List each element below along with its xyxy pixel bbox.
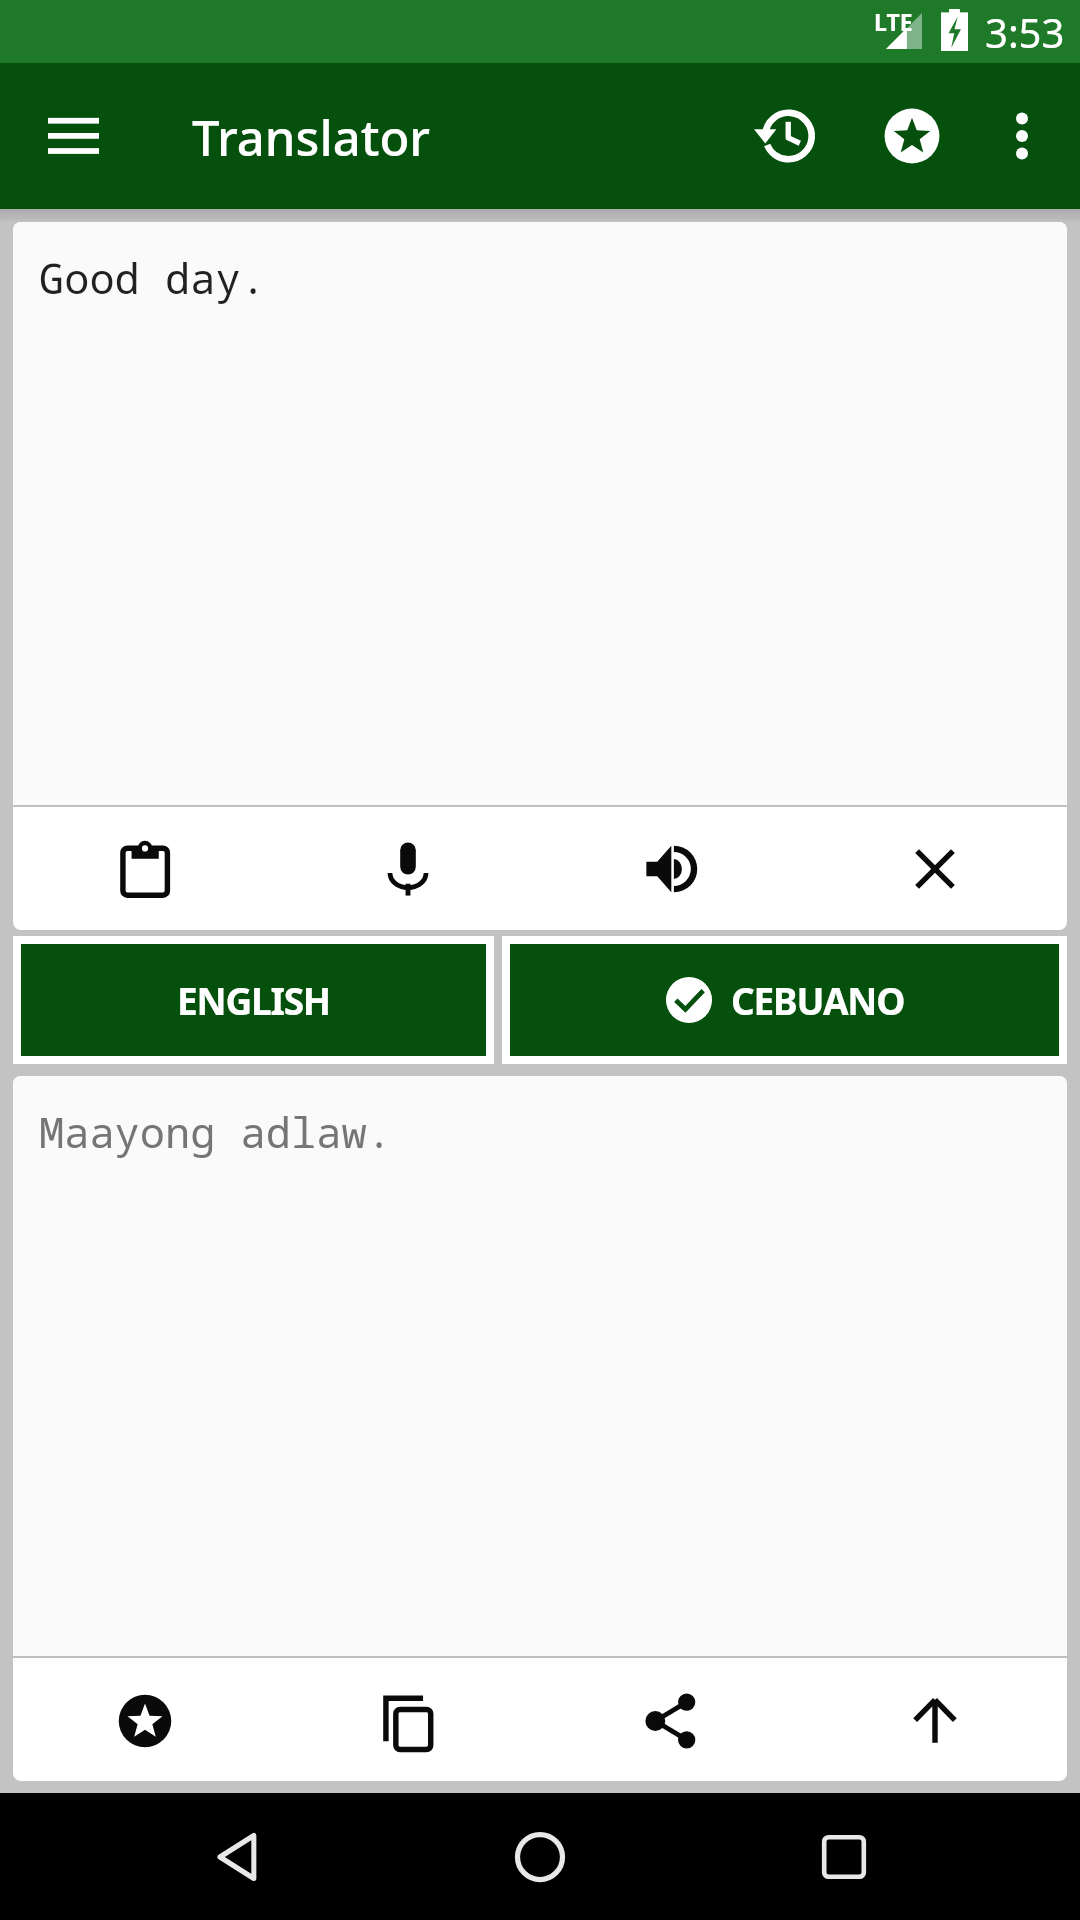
button[interactable]: Clear text	[803, 807, 1067, 930]
button[interactable]: Voice input	[276, 807, 539, 930]
button[interactable]: Share	[539, 1659, 803, 1781]
button[interactable]: Recents	[786, 1799, 902, 1915]
button[interactable]: Move up	[803, 1659, 1067, 1781]
button[interactable]: Open navigation menu	[24, 87, 122, 185]
button[interactable]: Listen	[539, 807, 803, 930]
staticText: Translator	[192, 104, 431, 171]
button[interactable]: More options	[972, 86, 1072, 186]
button[interactable]: History	[733, 86, 833, 186]
staticText: LTE	[874, 6, 913, 37]
button[interactable]: Favourite	[13, 1659, 276, 1781]
staticText: Good day.	[39, 249, 266, 306]
button[interactable]: Back	[180, 1799, 296, 1915]
button[interactable]: Paste from clipboard	[13, 807, 276, 930]
button[interactable]: ENGLISH	[13, 936, 494, 1064]
button[interactable]: Copy	[276, 1659, 539, 1781]
staticText: Maayong adlaw.	[39, 1103, 392, 1160]
button[interactable]: CEBUANO	[502, 936, 1067, 1064]
staticText: ENGLISH	[177, 975, 330, 1025]
button[interactable]: Favourites	[862, 86, 962, 186]
staticText: 3:53	[985, 5, 1065, 59]
button[interactable]: Home	[482, 1799, 598, 1915]
staticText: CEBUANO	[731, 975, 905, 1025]
